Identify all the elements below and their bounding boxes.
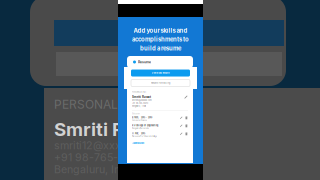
staticText: R V College of Engineering bbox=[132, 124, 158, 127]
button[interactable]: Delete entry bbox=[185, 124, 188, 127]
staticText: PERSONAL DETAILS bbox=[54, 97, 170, 111]
button[interactable]: Resume bbox=[127, 56, 193, 68]
staticText: Smriti Rawat bbox=[54, 118, 169, 141]
staticText: Narayana Pre-University College bbox=[132, 135, 157, 137]
staticText: Resume Formatting bbox=[151, 82, 170, 84]
button[interactable]: Edit personal details bbox=[184, 95, 188, 99]
staticText: Resume bbox=[138, 60, 151, 64]
button[interactable]: Edit entry bbox=[180, 116, 183, 119]
staticText: + Add Education bbox=[132, 142, 144, 144]
button[interactable]: Resume Formatting bbox=[131, 79, 190, 86]
staticText: B.Tech, 2015 - 2019 bbox=[132, 116, 152, 119]
staticText: Bengaluru, India bbox=[132, 105, 146, 107]
staticText: Education bbox=[132, 113, 140, 115]
staticText: Bengaluru, Karnataka bbox=[132, 127, 149, 129]
staticText: Bengaluru, India bbox=[54, 163, 136, 176]
staticText: Computer Science bbox=[132, 119, 147, 121]
button[interactable]: Download Resume bbox=[131, 69, 190, 76]
staticText: smriti12@xxxxxx.com bbox=[132, 99, 152, 101]
button[interactable]: Delete entry bbox=[185, 116, 188, 119]
staticText: Download Resume bbox=[151, 72, 169, 74]
button[interactable]: + Add Education bbox=[132, 141, 188, 145]
button[interactable]: Edit entry bbox=[180, 124, 183, 127]
staticText: build a resume bbox=[140, 45, 181, 52]
staticText: +91 98-765-43210 bbox=[132, 102, 148, 104]
button[interactable]: Edit entry bbox=[180, 132, 183, 135]
staticText: accomplishments to bbox=[132, 36, 189, 43]
staticText: smriti12@xxxxxx bbox=[54, 139, 139, 152]
staticText: Smriti Rawat bbox=[132, 95, 151, 99]
staticText: +91 98-765-43210 bbox=[54, 151, 150, 164]
staticText: II PUC, 2015 bbox=[132, 132, 145, 135]
staticText: PERSONAL DETAILS bbox=[132, 91, 146, 93]
button[interactable]: Delete entry bbox=[185, 132, 188, 135]
staticText: Add your skills and bbox=[133, 27, 187, 34]
